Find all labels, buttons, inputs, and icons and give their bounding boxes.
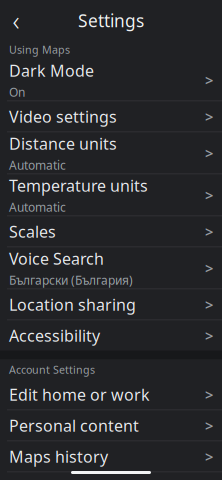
staticText: >	[205, 385, 213, 404]
staticText: >	[205, 185, 213, 205]
button[interactable]: Accessibility	[0, 320, 222, 350]
button[interactable]: Back	[0, 5, 32, 35]
staticText: Distance units	[9, 133, 117, 154]
button[interactable]: Dark Mode	[0, 59, 222, 100]
staticText: ‹	[12, 3, 19, 38]
staticText: Settings	[78, 9, 144, 32]
button[interactable]: Video settings	[0, 101, 222, 131]
button[interactable]: Maps history	[0, 441, 222, 471]
staticText: Using Maps	[9, 42, 70, 57]
staticText: >	[205, 258, 213, 278]
button[interactable]: Personal content	[0, 410, 222, 440]
staticText: Location sharing	[9, 294, 136, 315]
staticText: Personal content	[9, 415, 139, 436]
staticText: >	[205, 143, 213, 163]
staticText: >	[205, 222, 213, 241]
button[interactable]: Voice Search	[0, 247, 222, 288]
staticText: Voice Search	[9, 248, 104, 269]
staticText: Scales	[9, 221, 56, 242]
staticText: >	[205, 107, 213, 126]
staticText: Automatic	[9, 199, 66, 215]
staticText: Accessibility	[9, 325, 100, 346]
staticText: Account Settings	[9, 362, 95, 377]
staticText: >	[205, 447, 213, 466]
staticText: On	[9, 84, 25, 100]
staticText: Dark Mode	[9, 60, 94, 81]
staticText: >	[205, 70, 213, 90]
staticText: Edit home or work	[9, 384, 150, 405]
button[interactable]: Distance units	[0, 132, 222, 173]
button[interactable]: Edit home or work	[0, 379, 222, 409]
button[interactable]: Location sharing	[0, 289, 222, 319]
staticText: Temperature units	[9, 175, 148, 196]
button[interactable]: Notifications	[0, 472, 222, 480]
staticText: >	[205, 326, 213, 345]
staticText: Automatic	[9, 157, 66, 173]
staticText: Български (България)	[9, 272, 133, 288]
button[interactable]: Scales	[0, 216, 222, 246]
button[interactable]: Temperature units	[0, 174, 222, 215]
staticText: Maps history	[9, 446, 108, 467]
staticText: >	[205, 416, 213, 435]
staticText: >	[205, 295, 213, 314]
staticText: Video settings	[9, 106, 117, 127]
